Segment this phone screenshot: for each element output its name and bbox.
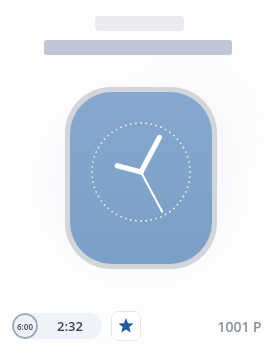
staticText: 1001 P [217, 317, 262, 336]
button[interactable]: Favorite [111, 311, 141, 341]
staticText: 2:32 [57, 317, 83, 335]
staticText: 6:00 [17, 321, 33, 332]
button[interactable]: Watch face preview [70, 92, 212, 264]
button[interactable]: 6:00 [12, 313, 102, 339]
